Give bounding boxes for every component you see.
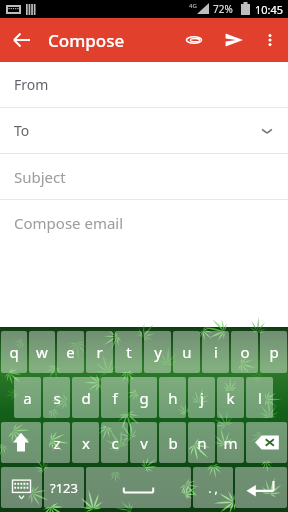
button[interactable]: t: [115, 331, 142, 373]
button[interactable]: . ,: [193, 467, 233, 508]
button[interactable]: n: [188, 422, 215, 463]
button[interactable]: Shift: [1, 422, 41, 463]
button[interactable]: j: [188, 377, 215, 418]
button[interactable]: r: [86, 331, 113, 373]
button[interactable]: b: [159, 422, 186, 463]
button[interactable]: Switch keyboard: [1, 467, 42, 508]
staticText: s: [53, 388, 61, 408]
button[interactable]: y: [144, 331, 171, 373]
button[interactable]: v: [130, 422, 157, 463]
staticText: j: [200, 388, 204, 408]
staticText: To: [14, 121, 30, 140]
button[interactable]: l: [246, 377, 273, 418]
button[interactable]: d: [72, 377, 99, 418]
button[interactable]: k: [217, 377, 244, 418]
staticText: c: [111, 433, 119, 453]
staticText: b: [168, 433, 178, 453]
staticText: 10:45: [255, 2, 284, 17]
staticText: v: [140, 433, 148, 453]
button[interactable]: p: [260, 331, 287, 373]
button[interactable]: Subject: [0, 154, 288, 199]
button[interactable]: w: [29, 331, 55, 373]
button[interactable]: o: [231, 331, 258, 373]
staticText: o: [240, 342, 250, 362]
button[interactable]: a: [14, 377, 41, 418]
staticText: a: [23, 388, 32, 408]
staticText: Subject: [14, 167, 66, 187]
button[interactable]: z: [43, 422, 70, 463]
staticText: m: [223, 433, 238, 453]
button[interactable]: ?123: [44, 467, 84, 508]
button[interactable]: Compose: [48, 29, 125, 52]
staticText: r: [96, 342, 103, 362]
staticText: z: [53, 433, 61, 453]
button[interactable]: h: [159, 377, 186, 418]
staticText: t: [126, 342, 132, 362]
button[interactable]: x: [72, 422, 99, 463]
staticText: w: [36, 342, 48, 362]
button[interactable]: i: [202, 331, 229, 373]
staticText: i: [214, 342, 218, 362]
staticText: Compose email: [14, 213, 124, 233]
staticText: g: [139, 388, 149, 408]
staticText: . ,: [208, 480, 218, 496]
button[interactable]: From: [0, 62, 288, 107]
button[interactable]: c: [101, 422, 128, 463]
staticText: e: [66, 342, 75, 362]
button[interactable]: f: [101, 377, 128, 418]
staticText: h: [168, 388, 178, 408]
staticText: From: [14, 75, 49, 94]
staticText: q: [9, 342, 19, 362]
button[interactable]: m: [217, 422, 244, 463]
button[interactable]: q: [1, 331, 27, 373]
button[interactable]: Compose email: [0, 200, 288, 245]
staticText: 72%: [213, 2, 233, 16]
staticText: l: [258, 388, 262, 408]
staticText: p: [269, 342, 279, 362]
button[interactable]: Back: [0, 18, 44, 62]
button[interactable]: To: [0, 108, 288, 153]
button[interactable]: Attach: [174, 20, 214, 60]
staticText: f: [112, 388, 118, 408]
staticText: ?123: [50, 479, 78, 497]
button[interactable]: Backspace: [246, 422, 287, 463]
button[interactable]: Send: [214, 20, 254, 60]
staticText: u: [182, 342, 192, 362]
button[interactable]: e: [57, 331, 84, 373]
button[interactable]: Space: [86, 467, 191, 508]
staticText: n: [197, 433, 207, 453]
button[interactable]: More options: [254, 24, 286, 56]
staticText: x: [82, 433, 90, 453]
staticText: k: [226, 388, 235, 408]
button[interactable]: Enter: [235, 467, 287, 508]
staticText: y: [154, 342, 162, 362]
staticText: 4G: [189, 2, 197, 10]
button[interactable]: s: [43, 377, 70, 418]
button[interactable]: u: [173, 331, 200, 373]
staticText: d: [81, 388, 91, 408]
button[interactable]: g: [130, 377, 157, 418]
